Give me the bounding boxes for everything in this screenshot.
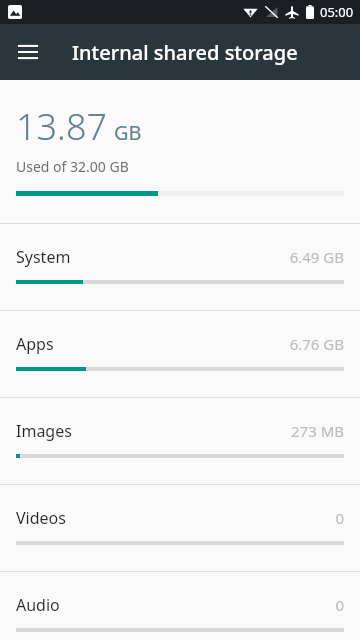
- staticText: 13.87: [16, 102, 108, 151]
- staticText: Images: [16, 420, 72, 442]
- button[interactable]: Audio: [0, 572, 360, 640]
- button[interactable]: 13.87: [0, 80, 360, 224]
- button[interactable]: System: [0, 224, 360, 311]
- staticText: System: [16, 246, 71, 268]
- staticText: Audio: [16, 594, 60, 616]
- staticText: 05:00: [320, 3, 354, 21]
- staticText: Videos: [16, 507, 66, 529]
- staticText: 0: [335, 595, 344, 615]
- staticText: 6.49 GB: [289, 247, 344, 267]
- staticText: 6.76 GB: [289, 334, 344, 354]
- button[interactable]: Apps: [0, 311, 360, 398]
- button[interactable]: Open navigation drawer: [6, 30, 50, 74]
- staticText: GB: [114, 119, 142, 146]
- staticText: 273 MB: [291, 421, 344, 441]
- staticText: Used of 32.00 GB: [16, 157, 129, 176]
- staticText: Apps: [16, 333, 54, 355]
- button[interactable]: Videos: [0, 485, 360, 572]
- button[interactable]: Images: [0, 398, 360, 485]
- staticText: 0: [335, 508, 344, 528]
- staticText: Internal shared storage: [72, 39, 298, 66]
